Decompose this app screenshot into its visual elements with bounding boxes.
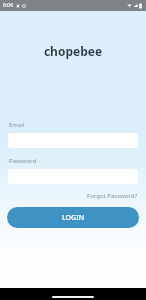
staticText: Password [9, 157, 37, 165]
button[interactable]: LOGIN [7, 207, 139, 228]
button[interactable]: Forgot Password? [0, 192, 146, 200]
staticText: Email [9, 121, 25, 129]
staticText: chopebee [0, 43, 146, 59]
staticText: LOGIN [62, 213, 85, 223]
other: Home gesture [52, 296, 94, 298]
staticText: 6:04 [3, 2, 13, 9]
